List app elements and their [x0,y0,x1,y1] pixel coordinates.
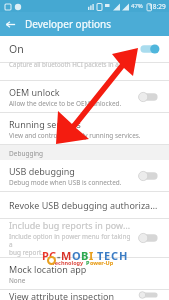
staticText: Mock location app [9,263,87,275]
staticText: C [49,248,57,263]
staticText: O [72,248,81,263]
button[interactable]: Toggle on [138,42,160,56]
staticText: None [9,276,26,285]
staticText: Developer options [25,17,112,31]
button[interactable]: Running services [0,113,169,144]
button[interactable]: Toggle off [138,231,160,245]
staticText: I [89,248,94,263]
button[interactable]: OEM unlock [0,81,169,112]
staticText: Technology [52,259,84,266]
staticText: - [57,248,61,263]
button[interactable]: Toggle off [138,169,160,183]
button[interactable]: Navigate up [0,14,20,34]
staticText: ower-Up [90,259,114,266]
staticText: View and control currently running servi… [9,131,141,140]
staticText: Debugging [9,149,44,158]
button[interactable]: Revoke USB debugging authorizatio.. [0,192,169,218]
staticText: B [81,248,89,263]
staticText: M [61,248,72,263]
staticText: P [86,259,90,266]
staticText: Revoke USB debugging authorizatio.. [9,199,160,211]
staticText: C [111,248,119,263]
staticText: Running services [9,118,81,130]
button[interactable]: Include bug reports in power m.. [0,219,169,257]
staticText: 18:29 [149,2,166,11]
staticText: E [104,248,111,263]
staticText: 47% [131,2,143,10]
staticText: Debug mode when USB is connected. [9,178,122,187]
staticText: Include option in power menu for taking … [9,232,134,257]
button[interactable]: Toggle off [138,90,160,104]
staticText: Allow the device to be OEM unlocked. [9,99,122,108]
staticText: Capture all bluetooth HCI packets in a f… [9,60,131,68]
button[interactable]: On [0,36,169,62]
button[interactable]: Toggle off [138,290,160,300]
staticText: On [9,42,24,56]
staticText: P [42,248,49,263]
staticText: H [119,248,128,263]
staticText: USB debugging [9,165,75,177]
button[interactable]: Mock location app [0,258,169,289]
staticText: T [97,248,104,263]
button[interactable]: USB debugging [0,160,169,191]
button[interactable]: Capture all bluetooth HCI packets in a f… [0,63,169,80]
button[interactable]: View attribute inspection [0,290,169,300]
staticText: View attribute inspection [9,290,115,300]
staticText: Include bug reports in power m.. [9,219,134,231]
staticText: OEM unlock [9,86,60,98]
